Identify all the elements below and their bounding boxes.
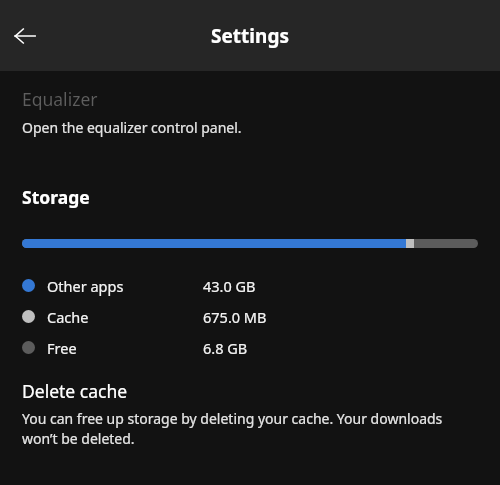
staticText: Cache: [47, 307, 89, 327]
button[interactable]: Cache: [0, 301, 500, 332]
button[interactable]: Equalizer: [0, 85, 500, 139]
staticText: Other apps: [47, 276, 124, 296]
staticText: You can free up storage by deleting your…: [22, 409, 478, 449]
button[interactable]: Other apps: [0, 270, 500, 301]
staticText: 43.0 GB: [203, 276, 256, 296]
staticText: Open the equalizer control panel.: [22, 118, 242, 137]
staticText: Delete cache: [22, 379, 128, 403]
staticText: Settings: [211, 23, 289, 49]
button[interactable]: Free: [0, 332, 500, 363]
staticText: Equalizer: [22, 87, 98, 111]
staticText: Free: [47, 338, 77, 358]
button[interactable]: Back: [7, 18, 43, 54]
staticText: Storage: [22, 185, 90, 209]
button[interactable]: Delete cache: [0, 377, 500, 451]
staticText: 6.8 GB: [203, 338, 248, 358]
staticText: 675.0 MB: [203, 307, 267, 327]
